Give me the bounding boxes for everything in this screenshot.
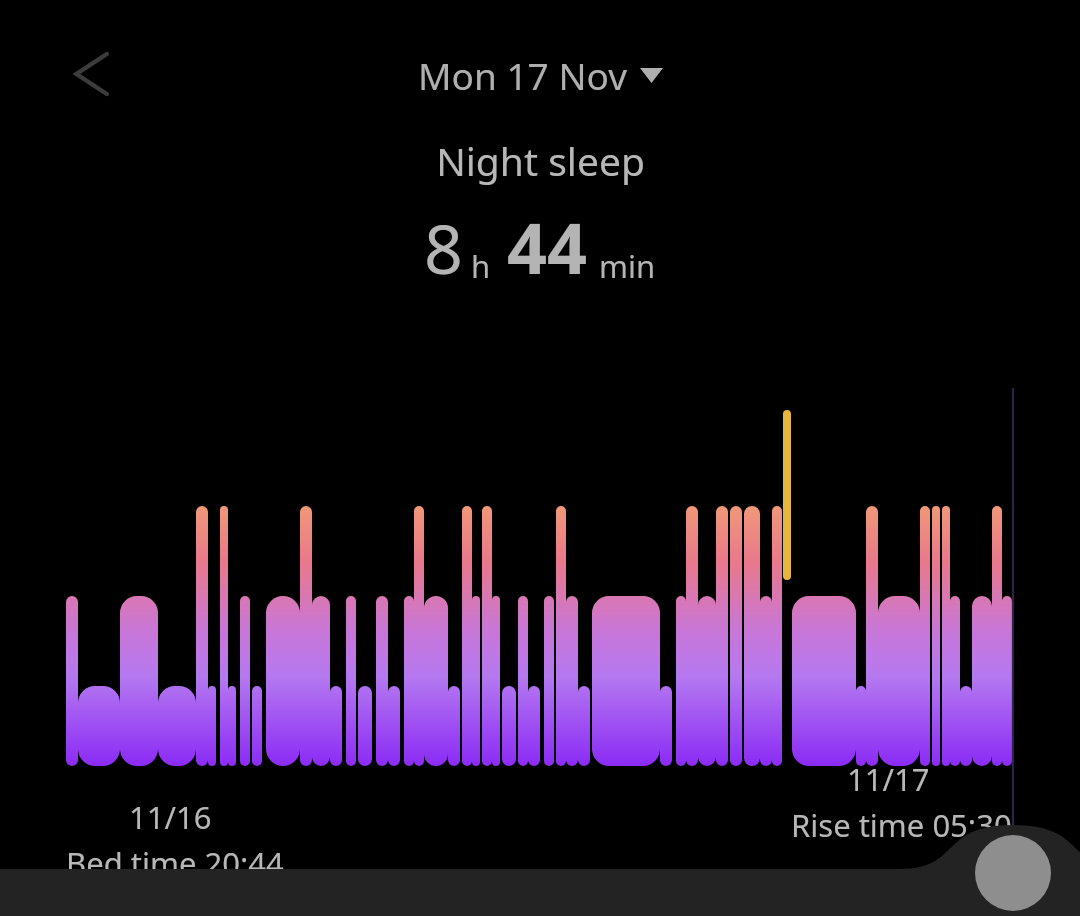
staticText: 44: [507, 199, 588, 294]
button[interactable]: Back: [50, 34, 130, 114]
staticText: 11/16: [129, 796, 212, 838]
button[interactable]: Mon 17 Nov: [0, 50, 1080, 100]
staticText: Rise time 05:30: [791, 804, 1012, 846]
button[interactable]: Add sleep record: [975, 835, 1051, 911]
staticText: h: [471, 245, 491, 287]
staticText: min: [599, 245, 656, 287]
staticText: 8: [424, 201, 463, 294]
staticText: 11/17: [847, 758, 930, 800]
staticText: Night sleep: [436, 134, 645, 187]
staticText: Bed time 20:44: [66, 842, 284, 884]
staticText: Mon 17 Nov: [418, 50, 627, 100]
